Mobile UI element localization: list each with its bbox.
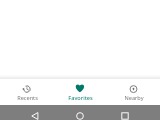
staticText: Recents	[17, 94, 38, 102]
staticText: Nearby	[124, 94, 144, 102]
button[interactable]: Recent apps	[115, 112, 135, 120]
button[interactable]: Favorites	[54, 79, 107, 105]
button[interactable]: Nearby	[107, 79, 160, 105]
button[interactable]: Home	[70, 112, 90, 120]
button[interactable]: Recents	[0, 79, 54, 105]
button[interactable]: Back	[25, 112, 45, 120]
staticText: Favorites	[68, 94, 93, 102]
